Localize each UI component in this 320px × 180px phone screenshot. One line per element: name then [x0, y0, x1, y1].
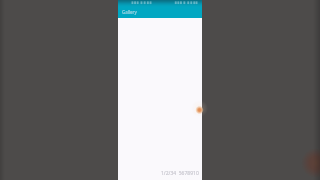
staticText: Gallery: [122, 9, 137, 15]
staticText: 1/2/34 5678910: [161, 170, 199, 177]
button[interactable]: Gallery: [122, 9, 137, 15]
